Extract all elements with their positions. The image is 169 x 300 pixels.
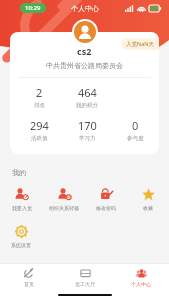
button[interactable]: 464 (63, 85, 111, 109)
button[interactable]: 我要入党 (0, 185, 43, 213)
staticText: 参与度 (127, 135, 144, 142)
staticText: 入党NaN天 (126, 40, 154, 48)
staticText: 修改密码 (96, 205, 116, 211)
staticText: 0 (132, 118, 139, 133)
button[interactable]: 修改密码 (85, 185, 127, 213)
staticText: 我要入党 (12, 205, 32, 211)
button[interactable]: 294 (16, 118, 63, 142)
staticText: 活跃值 (31, 135, 48, 142)
button[interactable]: 首页 (0, 264, 57, 290)
staticText: 294 (30, 118, 49, 133)
staticText: 2 (36, 85, 43, 100)
staticText: 464 (78, 85, 97, 100)
button[interactable]: 个人中心 (113, 264, 169, 290)
staticText: 收藏 (143, 205, 153, 211)
staticText: 党工大厅 (75, 281, 95, 287)
staticText: 10:29 (25, 4, 41, 12)
staticText: 首页 (24, 281, 34, 287)
button[interactable]: 2 (16, 85, 63, 109)
button[interactable]: 170 (63, 118, 111, 142)
staticText: 系统设置 (11, 242, 31, 248)
staticText: 中共贵州省公路局委员会 (46, 61, 123, 70)
button[interactable]: 系统设置 (0, 222, 42, 250)
button[interactable]: 收藏 (127, 185, 169, 213)
staticText: 个人中心 (71, 4, 99, 13)
staticText: 个人中心 (131, 281, 151, 287)
staticText: 我的积分 (76, 102, 98, 109)
staticText: 组织关系转移 (49, 205, 79, 211)
button[interactable]: Profile avatar (74, 21, 96, 43)
staticText: 排名 (34, 102, 45, 109)
staticText: cs2 (77, 45, 92, 57)
button[interactable]: 0 (111, 118, 159, 142)
staticText: 学习力 (79, 135, 96, 142)
staticText: 我的 (12, 168, 26, 177)
button[interactable]: 入党NaN天 (121, 38, 159, 50)
staticText: 170 (78, 118, 97, 133)
button[interactable]: 组织关系转移 (43, 185, 85, 213)
button[interactable]: 党工大厅 (57, 264, 113, 290)
